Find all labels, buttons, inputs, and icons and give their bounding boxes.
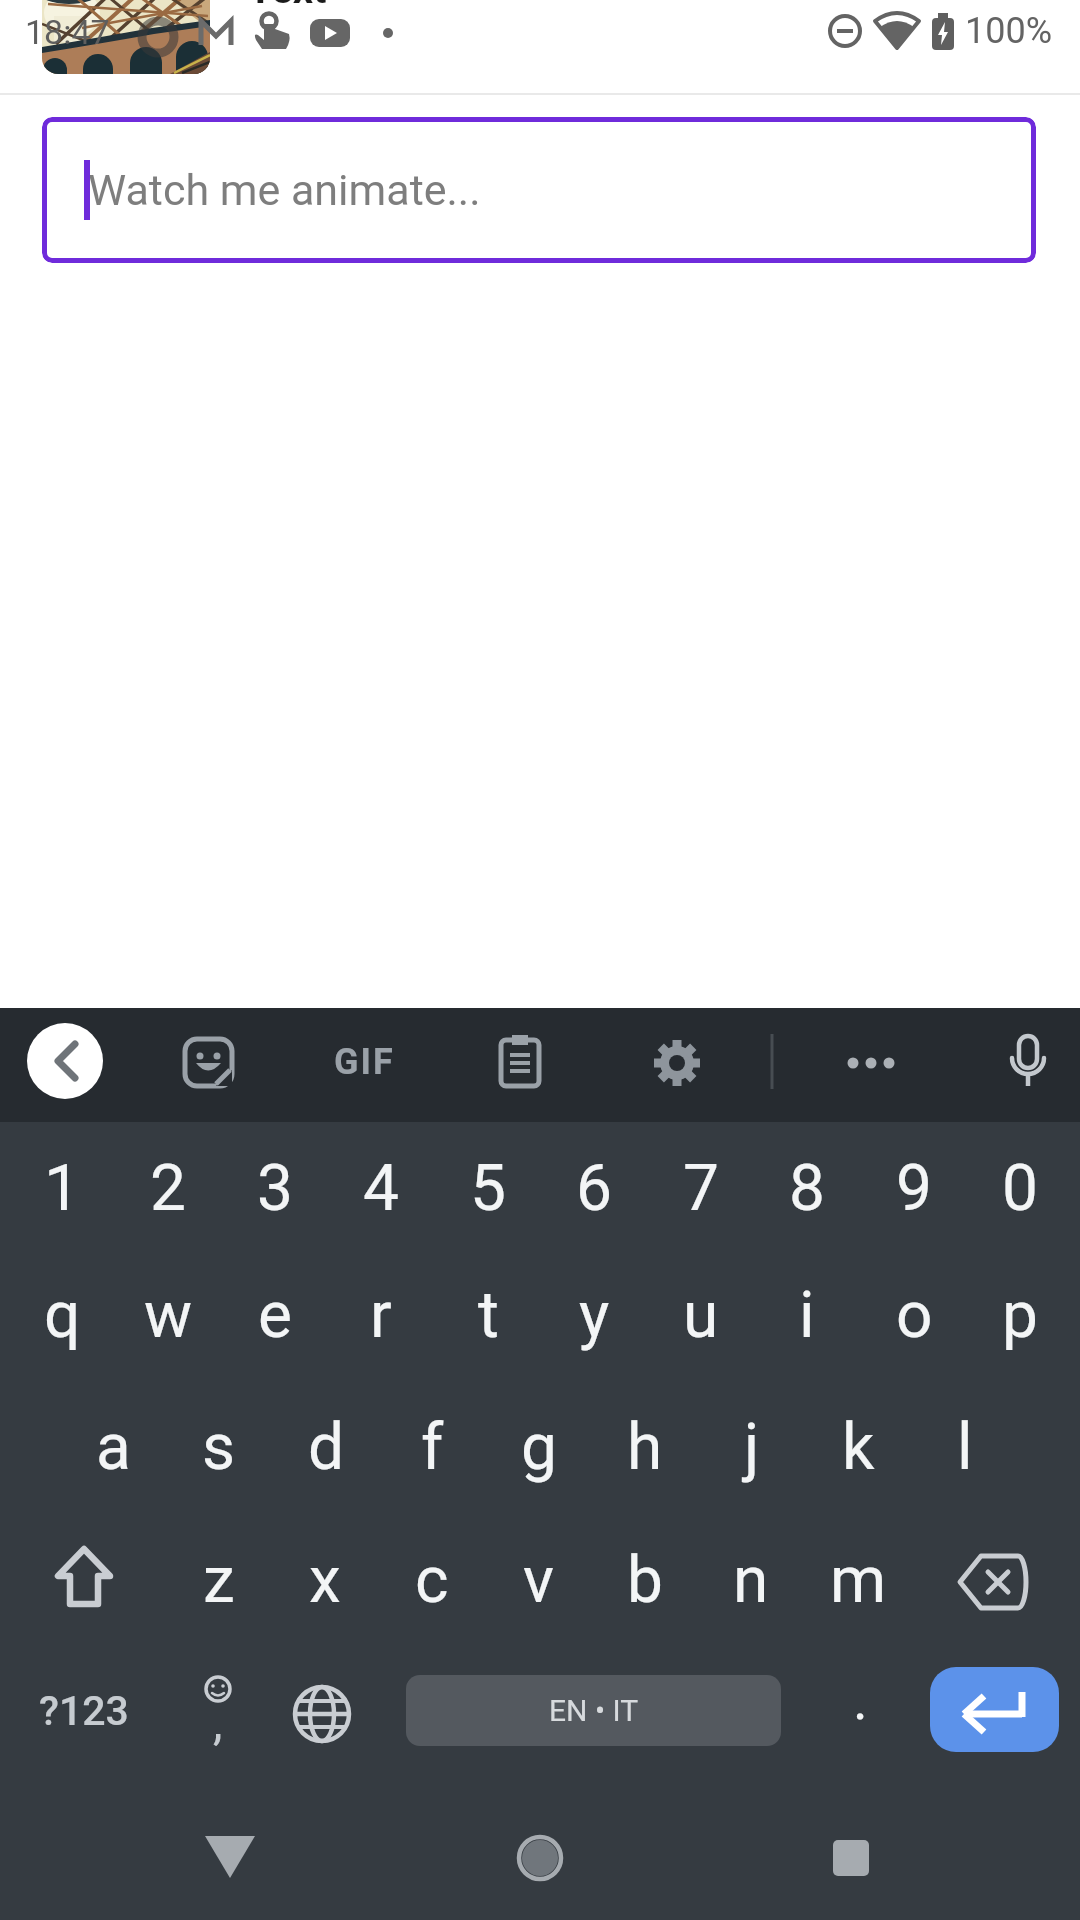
button[interactable] xyxy=(27,1023,103,1099)
staticText: l xyxy=(957,1410,973,1485)
staticText: 8 xyxy=(789,1151,825,1226)
staticText: v xyxy=(523,1543,554,1618)
staticText: . xyxy=(853,1667,868,1733)
staticText: i xyxy=(799,1278,815,1353)
staticText: g xyxy=(521,1410,557,1485)
button[interactable]: Watch me animate... xyxy=(42,117,1036,263)
staticText: k xyxy=(842,1410,875,1485)
staticText: 7 xyxy=(683,1151,719,1226)
staticText: j xyxy=(744,1410,760,1485)
staticText: t xyxy=(478,1278,499,1353)
staticText: p xyxy=(1002,1278,1038,1353)
staticText: h xyxy=(627,1410,663,1485)
staticText: z xyxy=(203,1543,235,1618)
staticText: 0 xyxy=(1002,1151,1038,1226)
staticText: 6 xyxy=(576,1151,612,1226)
staticText: q xyxy=(44,1278,81,1353)
staticText: 18:47 xyxy=(25,12,110,52)
staticText: 4 xyxy=(363,1151,399,1226)
staticText: 5 xyxy=(470,1151,506,1226)
staticText: 1 xyxy=(44,1151,80,1226)
button[interactable]: EN • IT xyxy=(406,1675,781,1746)
staticText: 9 xyxy=(896,1151,932,1226)
staticText: 3 xyxy=(257,1151,293,1226)
staticText: a xyxy=(96,1410,131,1485)
staticText: y xyxy=(579,1278,610,1353)
staticText: u xyxy=(683,1278,719,1353)
staticText: 2 xyxy=(150,1151,186,1226)
staticText: x xyxy=(309,1543,341,1618)
staticText: o xyxy=(896,1278,933,1353)
staticText: , xyxy=(213,1694,223,1750)
staticText: 100% xyxy=(965,10,1053,52)
staticText: GIF xyxy=(334,1041,395,1083)
staticText: s xyxy=(202,1410,236,1485)
staticText: f xyxy=(421,1410,444,1485)
staticText: w xyxy=(144,1278,193,1353)
staticText: ?123 xyxy=(39,1687,129,1735)
staticText: b xyxy=(627,1543,663,1618)
staticText: Text xyxy=(248,0,327,13)
staticText: m xyxy=(830,1543,887,1618)
staticText: e xyxy=(258,1278,292,1353)
staticText: d xyxy=(308,1410,345,1485)
button[interactable] xyxy=(930,1667,1059,1752)
staticText: EN • IT xyxy=(549,1693,639,1728)
staticText: r xyxy=(370,1278,392,1353)
staticText: n xyxy=(733,1543,769,1618)
staticText: c xyxy=(415,1543,449,1618)
staticText: Watch me animate... xyxy=(88,165,481,215)
